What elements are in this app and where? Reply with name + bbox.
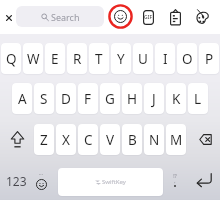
- button[interactable]: X: [56, 124, 76, 155]
- button[interactable]: Stickers: [192, 6, 213, 27]
- staticText: ···: [39, 171, 44, 178]
- button[interactable]: S: [34, 83, 54, 114]
- staticText: U: [138, 50, 148, 68]
- button[interactable]: Shift: [2, 124, 32, 155]
- button[interactable]: F: [78, 83, 98, 114]
- button[interactable]: Backspace: [190, 124, 220, 155]
- button[interactable]: I: [155, 43, 175, 74]
- staticText: J: [152, 90, 156, 108]
- button[interactable]: P: [199, 43, 219, 74]
- button[interactable]: H: [122, 83, 142, 114]
- staticText: Q: [6, 50, 17, 68]
- staticText: V: [106, 131, 115, 149]
- button[interactable]: K: [166, 83, 186, 114]
- button[interactable]: Enter: [190, 166, 218, 194]
- button[interactable]: Search: [16, 6, 104, 27]
- button[interactable]: E: [45, 43, 65, 74]
- staticText: I: [163, 50, 168, 68]
- staticText: Y: [117, 50, 125, 68]
- staticText: P: [205, 50, 214, 68]
- button[interactable]: U: [133, 43, 153, 74]
- staticText: R: [73, 50, 82, 68]
- button[interactable]: M: [166, 124, 186, 155]
- button[interactable]: G: [100, 83, 120, 114]
- staticText: F: [84, 90, 92, 108]
- staticText: S: [40, 90, 48, 108]
- button[interactable]: Z: [34, 124, 54, 155]
- button[interactable]: GIF: [138, 7, 159, 28]
- button[interactable]: O: [177, 43, 197, 74]
- button[interactable]: B: [122, 124, 142, 155]
- button[interactable]: C: [78, 124, 98, 155]
- staticText: T: [95, 50, 103, 68]
- button[interactable]: Punctuation: [164, 166, 186, 194]
- button[interactable]: Close: [0, 7, 17, 29]
- staticText: K: [172, 90, 181, 108]
- button[interactable]: V: [100, 124, 120, 155]
- button[interactable]: N: [144, 124, 164, 155]
- staticText: O: [182, 50, 193, 68]
- staticText: GIF: [144, 14, 153, 21]
- button[interactable]: Emoji: [108, 4, 133, 29]
- button[interactable]: D: [56, 83, 76, 114]
- staticText: M: [170, 131, 183, 149]
- staticText: 123: [6, 173, 27, 189]
- button[interactable]: L: [188, 83, 208, 114]
- staticText: H: [127, 90, 138, 108]
- button[interactable]: SwiftKey: [58, 168, 163, 196]
- button[interactable]: Clipboard: [165, 6, 186, 27]
- button[interactable]: Emoji keyboard: [29, 166, 53, 194]
- staticText: N: [149, 131, 160, 149]
- staticText: Z: [40, 131, 48, 149]
- staticText: X: [62, 131, 70, 149]
- button[interactable]: J: [144, 83, 164, 114]
- button[interactable]: A: [12, 83, 32, 114]
- staticText: !? ,: [173, 173, 177, 184]
- staticText: C: [84, 131, 93, 149]
- button[interactable]: Y: [111, 43, 131, 74]
- button[interactable]: Q: [1, 43, 21, 74]
- staticText: E: [51, 50, 59, 68]
- staticText: A: [18, 90, 27, 108]
- button[interactable]: W: [23, 43, 43, 74]
- button[interactable]: R: [67, 43, 87, 74]
- button[interactable]: 123: [0, 168, 32, 194]
- staticText: B: [128, 131, 137, 149]
- staticText: W: [27, 50, 40, 68]
- staticText: Search: [51, 11, 80, 23]
- staticText: G: [105, 90, 115, 108]
- staticText: D: [61, 90, 71, 108]
- staticText: SwiftKey: [102, 178, 126, 186]
- button[interactable]: T: [89, 43, 109, 74]
- staticText: L: [194, 90, 202, 108]
